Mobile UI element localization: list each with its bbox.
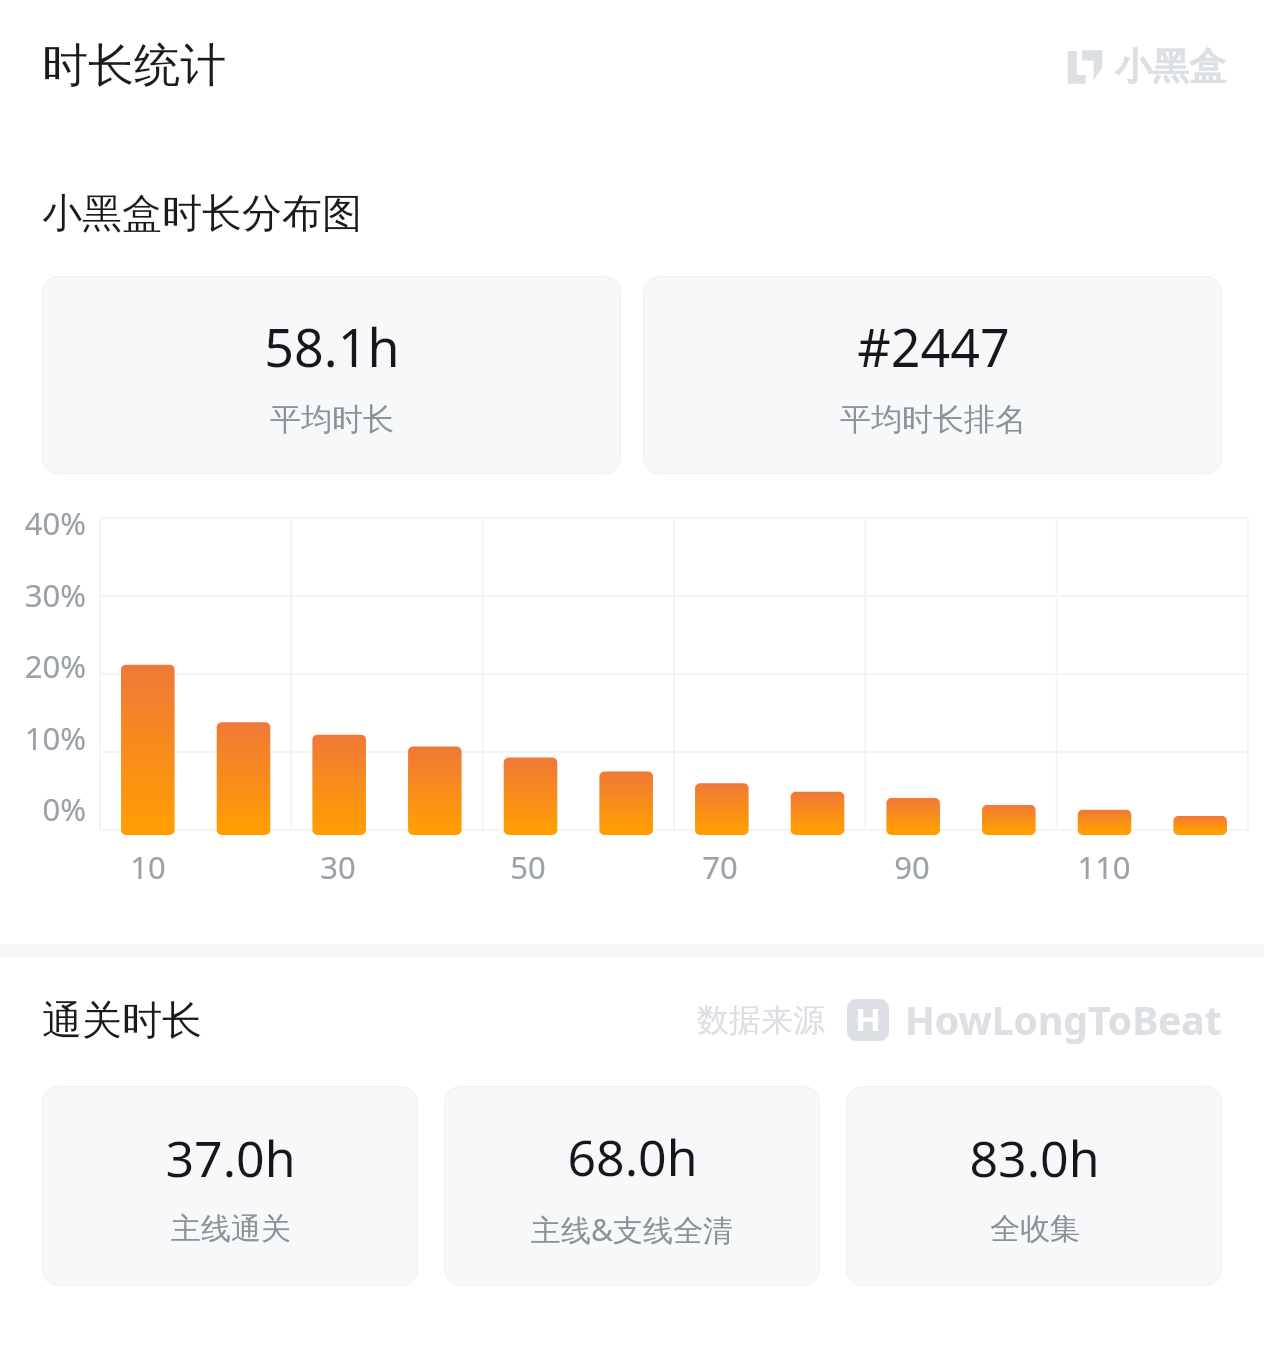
staticText: 平均时长 <box>270 400 394 439</box>
button[interactable]: 83.0h <box>846 1086 1222 1286</box>
staticText: 全收集 <box>990 1210 1080 1248</box>
staticText: 30% <box>24 574 86 616</box>
staticText: #2447 <box>857 311 1010 382</box>
staticText: 小黑盒 <box>1115 43 1226 90</box>
staticText: 50 <box>510 846 546 888</box>
staticText: 30 <box>320 846 356 888</box>
staticText: 通关时长 <box>42 995 202 1045</box>
button[interactable]: 68.0h <box>444 1086 820 1286</box>
staticText: 58.1h <box>264 311 400 382</box>
staticText: 110 <box>1077 846 1131 888</box>
button[interactable]: 58.1h <box>42 276 621 474</box>
staticText: 数据来源 <box>697 1000 825 1040</box>
staticText: 0% <box>42 788 86 830</box>
staticText: 20% <box>24 645 86 687</box>
staticText: 70 <box>702 846 738 888</box>
staticText: 小黑盒时长分布图 <box>42 188 362 238</box>
staticText: 40% <box>24 502 86 544</box>
staticText: 90 <box>894 846 930 888</box>
staticText: HowLongToBeat <box>905 993 1222 1046</box>
staticText: 时长统计 <box>42 37 226 95</box>
staticText: 83.0h <box>969 1124 1100 1192</box>
button[interactable]: 37.0h <box>42 1086 418 1286</box>
staticText: 主线&支线全清 <box>531 1209 733 1250</box>
staticText: 主线通关 <box>171 1210 291 1248</box>
button[interactable]: #2447 <box>643 276 1222 474</box>
button[interactable]: 数据来源 HowLongToBeat <box>697 993 1222 1046</box>
staticText: 10 <box>130 846 166 888</box>
staticText: 68.0h <box>567 1123 698 1191</box>
staticText: 10% <box>24 717 86 759</box>
staticText: 37.0h <box>165 1124 296 1192</box>
staticText: 平均时长排名 <box>840 400 1026 439</box>
